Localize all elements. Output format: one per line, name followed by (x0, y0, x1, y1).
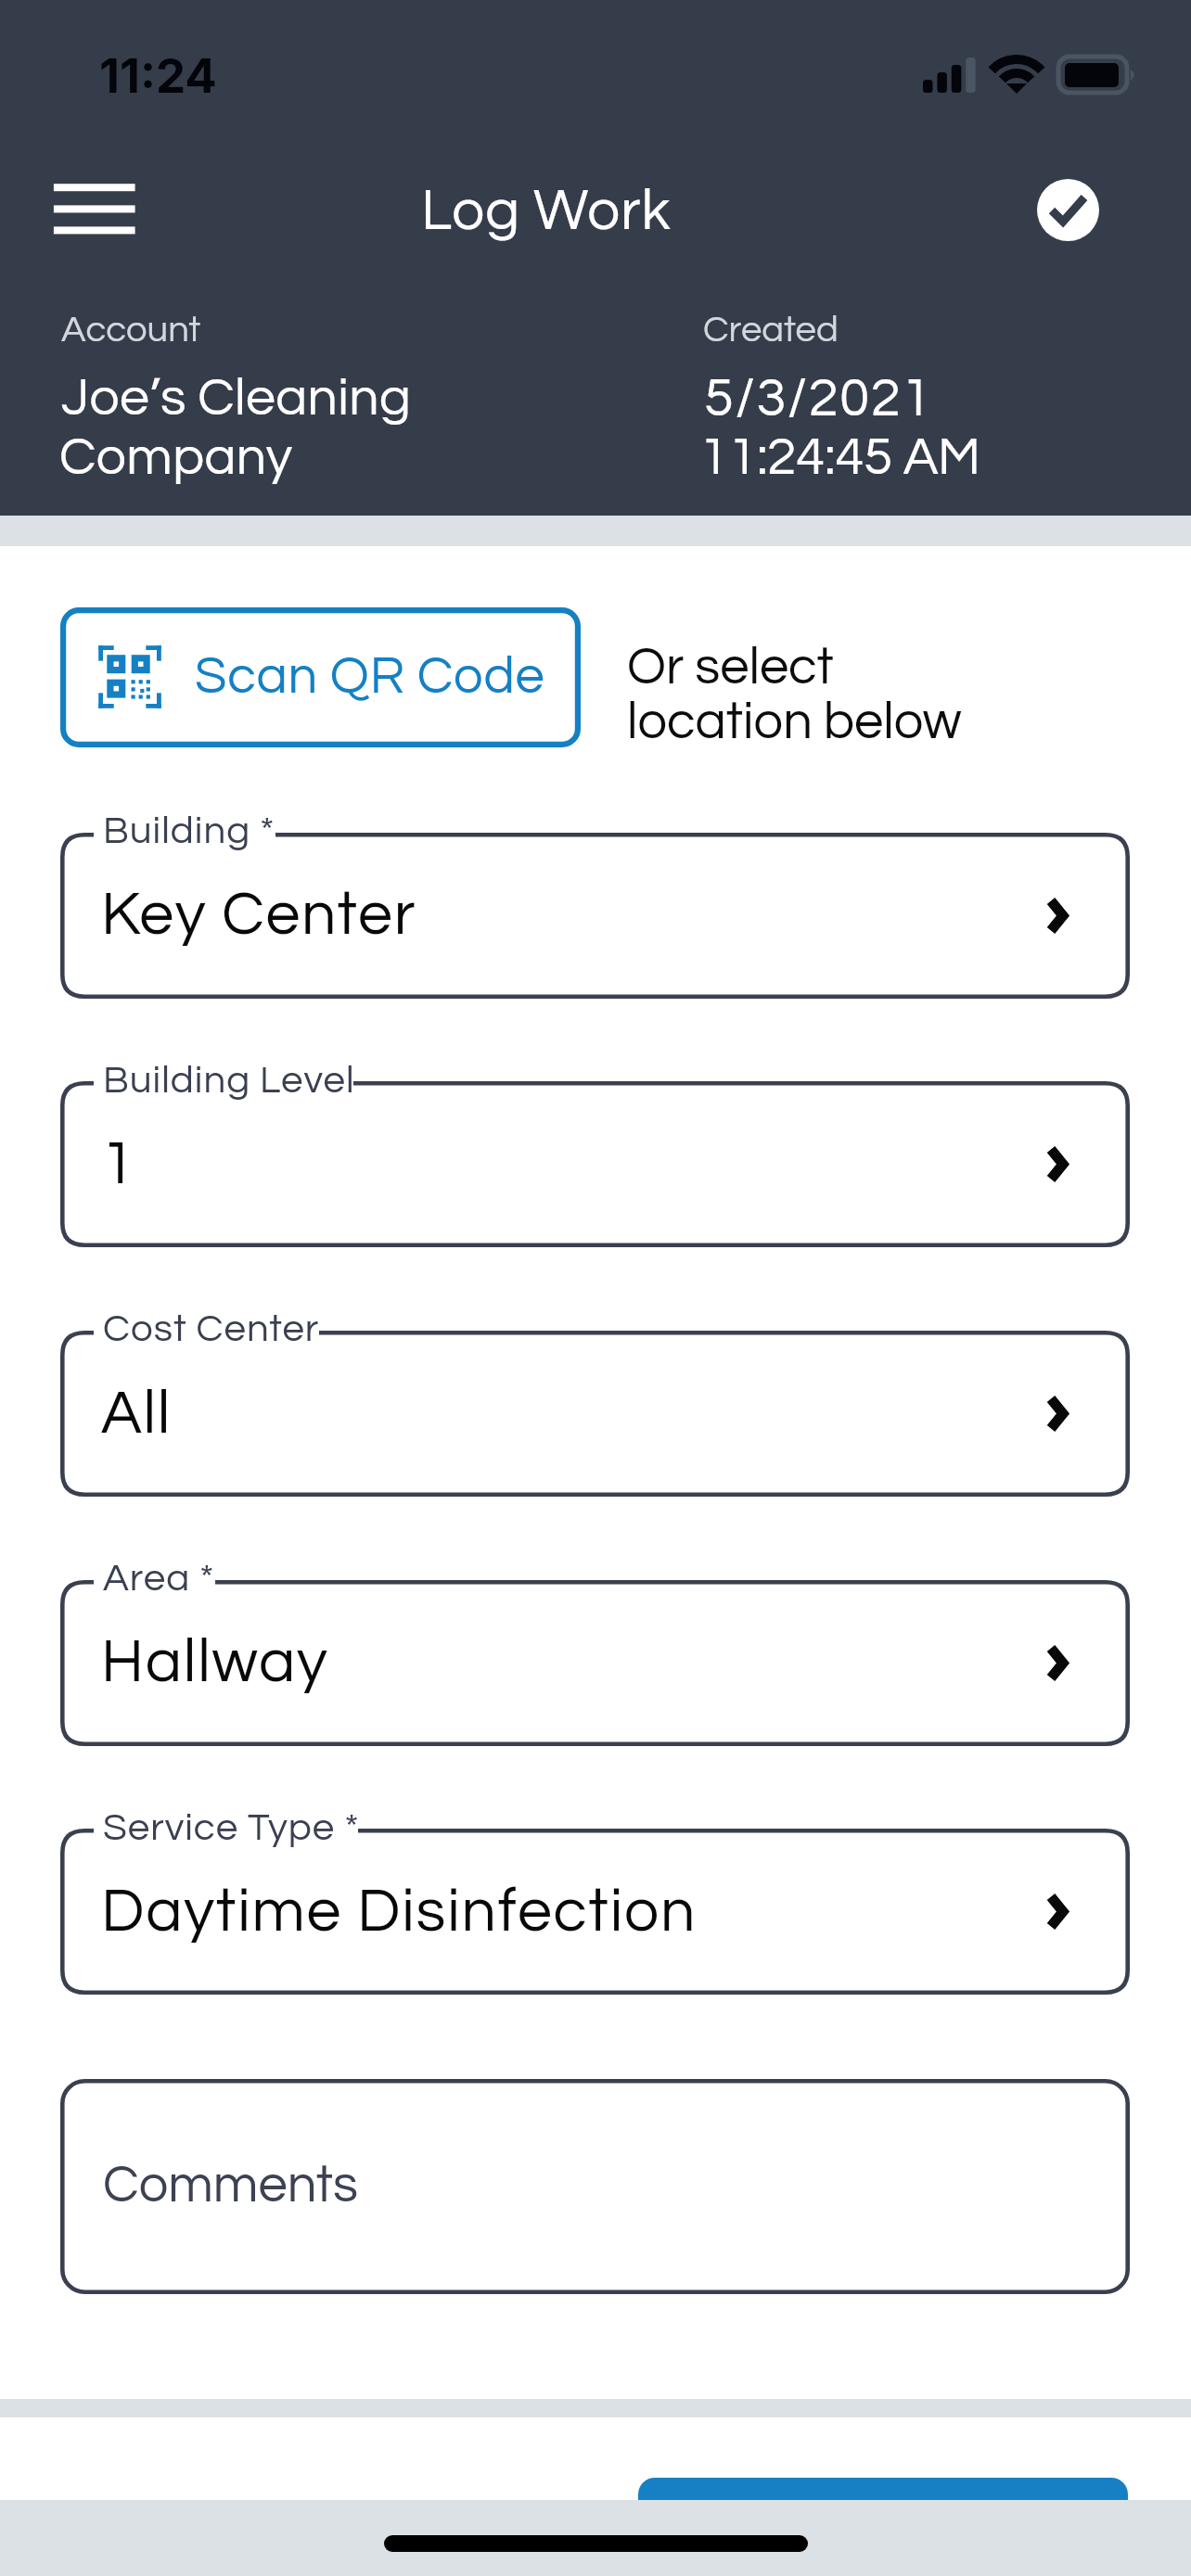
staticText: Cost Center (103, 1309, 320, 1349)
staticText: Area * (103, 1559, 215, 1599)
staticText: Joe’s Cleaning (61, 371, 412, 426)
staticText: Log Work (421, 182, 672, 241)
button[interactable] (60, 2079, 1130, 2294)
button[interactable]: Primary action (638, 2478, 1128, 2576)
staticText: Created (703, 311, 839, 349)
button[interactable]: Save log (1037, 179, 1099, 241)
staticText: Comments (103, 2159, 358, 2213)
button[interactable] (60, 1081, 1130, 1247)
staticText: Building * (103, 811, 275, 851)
button[interactable] (60, 607, 581, 747)
button[interactable] (60, 833, 1130, 999)
staticText: Scan QR Code (195, 650, 545, 704)
staticText: All (101, 1383, 173, 1446)
staticText: Building Level (103, 1061, 355, 1101)
staticText: Daytime Disinfection (101, 1881, 698, 1944)
button[interactable] (60, 1331, 1130, 1497)
staticText: Or select location below (627, 641, 962, 749)
staticText: 5/3/2021 (704, 371, 933, 427)
staticText: Account (61, 311, 201, 349)
staticText: Key Center (101, 884, 417, 947)
staticText: 11:24:45 AM (699, 430, 980, 485)
staticText: Company (59, 430, 293, 485)
button[interactable] (60, 1580, 1130, 1746)
staticText: 1 (101, 1133, 137, 1196)
staticText: 11:24 (99, 47, 217, 105)
button[interactable] (60, 1829, 1130, 1995)
button[interactable]: Open navigation menu (26, 154, 163, 265)
staticText: Hallway (101, 1631, 329, 1694)
staticText: Service Type * (103, 1808, 360, 1848)
